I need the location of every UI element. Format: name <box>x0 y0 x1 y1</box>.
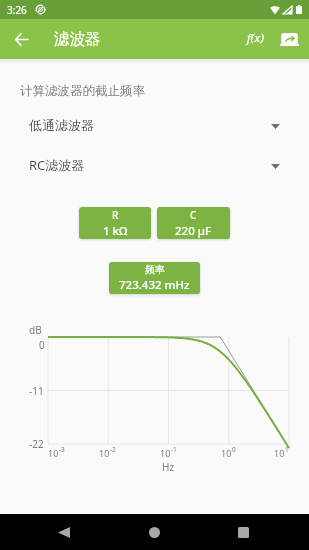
staticText: -22 <box>29 437 44 451</box>
staticText: -2 <box>110 445 116 454</box>
staticText: RC滤波器 <box>29 156 85 174</box>
staticText: f(x) <box>247 30 265 45</box>
staticText: 723.432 mHz <box>119 277 190 293</box>
staticText: R <box>112 208 119 222</box>
staticText: -3 <box>59 445 65 454</box>
staticText: 频率 <box>145 263 165 276</box>
staticText: 3:26 <box>7 3 27 17</box>
staticText: 滤波器 <box>54 29 101 49</box>
staticText: 计算滤波器的截止频率 <box>20 83 145 99</box>
staticText: 0 <box>232 445 236 454</box>
button[interactable]: Back <box>46 514 82 550</box>
button[interactable]: 频率 <box>109 262 200 294</box>
staticText: 220 µF <box>175 223 212 239</box>
staticText: 10 <box>99 447 110 459</box>
staticText: 10 <box>274 447 285 459</box>
button[interactable]: R <box>79 207 151 239</box>
button[interactable]: Recents <box>225 514 261 550</box>
staticText: Hz <box>162 460 175 474</box>
button[interactable]: Present <box>269 19 309 59</box>
staticText: 10 <box>48 447 59 459</box>
button[interactable]: RC滤波器 <box>0 153 309 177</box>
staticText: 0 <box>39 338 45 352</box>
staticText: -11 <box>29 384 44 398</box>
button[interactable]: Back <box>5 23 37 55</box>
staticText: -1 <box>171 445 177 454</box>
staticText: 10 <box>221 447 232 459</box>
button[interactable]: Home <box>136 514 172 550</box>
button[interactable]: 低通滤波器 <box>0 113 309 137</box>
staticText: 1 <box>285 445 289 454</box>
button[interactable]: Functions <box>237 20 275 58</box>
button[interactable]: C <box>157 207 230 239</box>
staticText: 低通滤波器 <box>29 117 94 133</box>
staticText: C <box>190 208 197 222</box>
staticText: 10 <box>160 447 171 459</box>
staticText: dB <box>29 323 42 337</box>
staticText: 1 kΩ <box>103 223 128 239</box>
